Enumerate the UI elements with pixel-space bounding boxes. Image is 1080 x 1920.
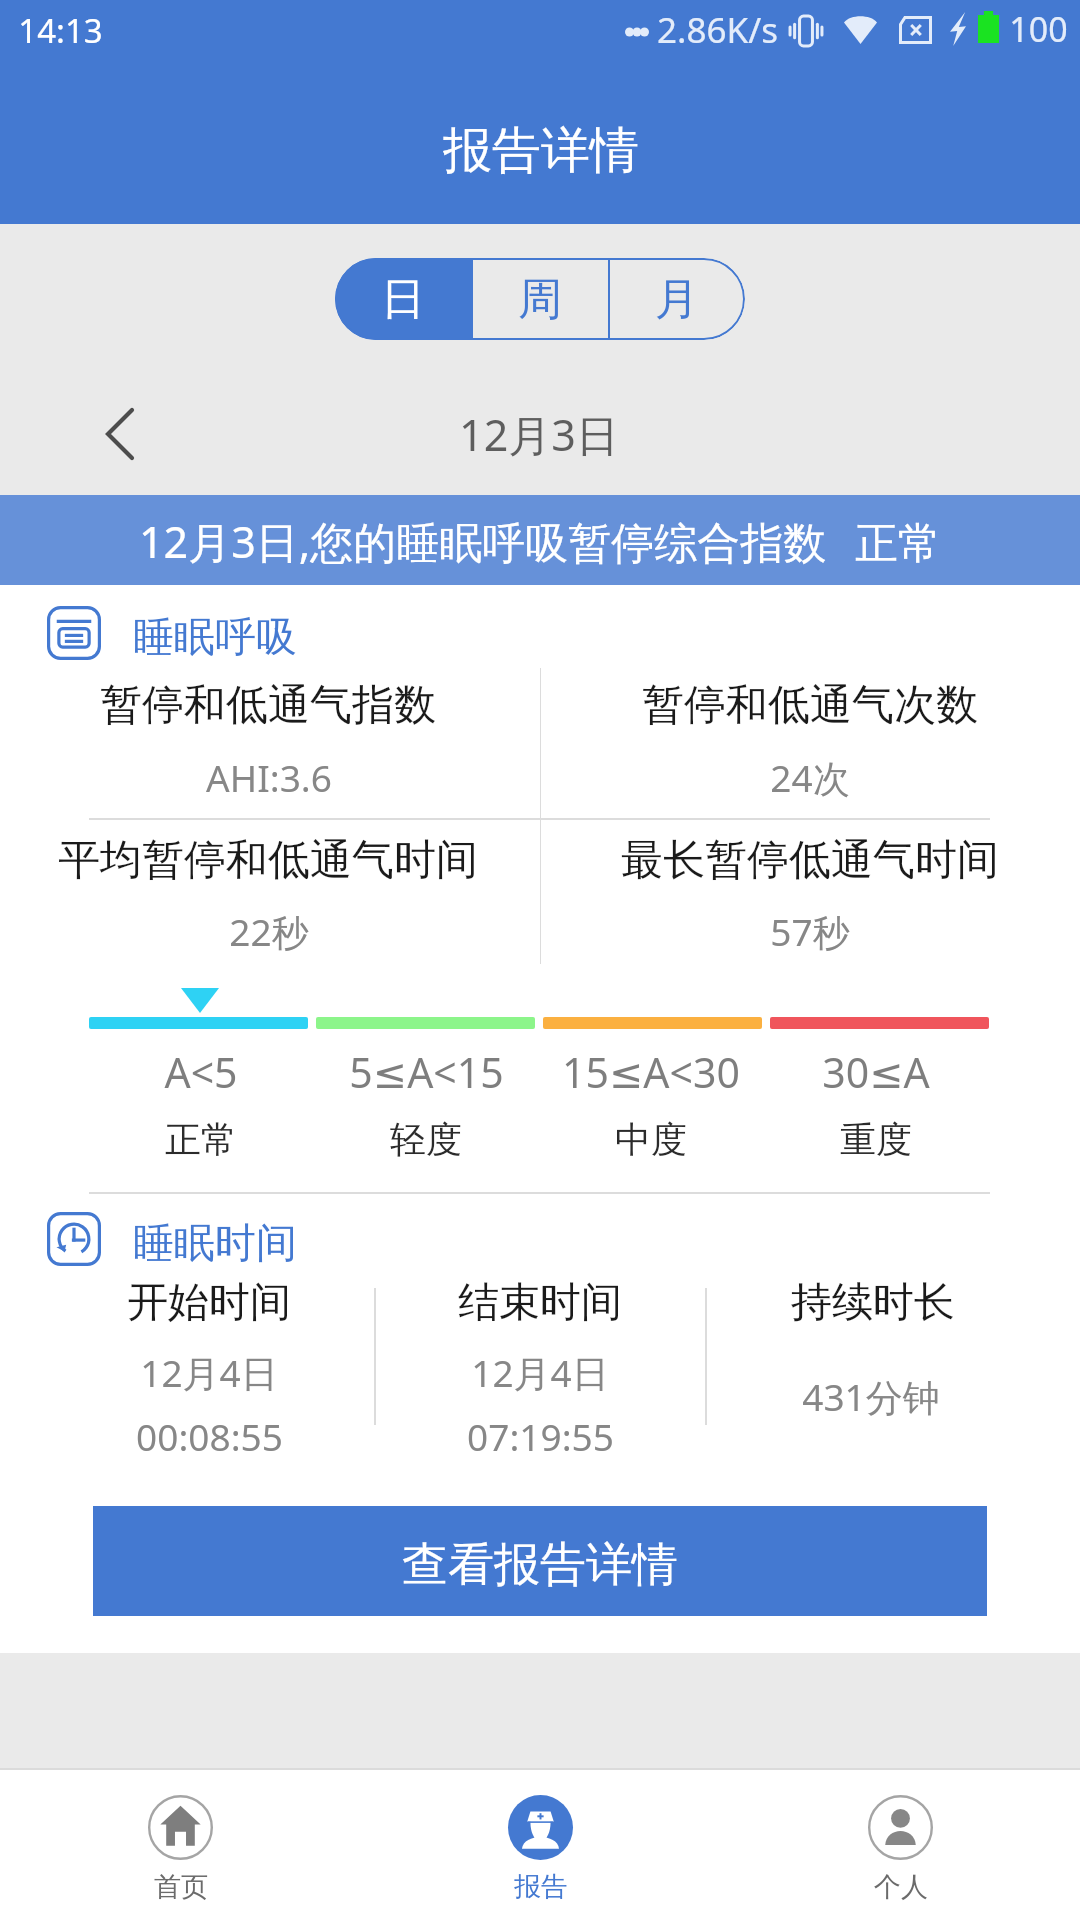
- staticText: 00:08:55: [136, 1411, 283, 1461]
- staticText: 30≤A: [822, 1044, 930, 1100]
- staticText: 12月3日: [459, 405, 619, 464]
- staticText: 12月3日,您的睡眠呼吸暂停综合指数 正常: [139, 512, 941, 571]
- staticText: 平均暂停和低通气时间: [58, 834, 478, 887]
- staticText: 100: [1009, 6, 1068, 52]
- staticText: 持续时长: [791, 1277, 955, 1329]
- staticText: AHI:3.6: [206, 752, 332, 802]
- staticText: 开始时间: [127, 1277, 291, 1329]
- button[interactable]: Previous day: [70, 384, 170, 484]
- staticText: 12月4日: [140, 1347, 278, 1398]
- staticText: 22秒: [229, 906, 309, 957]
- staticText: 睡眠呼吸: [133, 612, 297, 664]
- button[interactable]: 查看报告详情: [93, 1506, 987, 1616]
- staticText: 日: [381, 272, 425, 327]
- staticText: 431分钟: [802, 1371, 940, 1422]
- staticText: 2.86K/s: [657, 6, 778, 54]
- staticText: 24次: [770, 752, 850, 803]
- staticText: 中度: [615, 1117, 687, 1162]
- button[interactable]: 首页: [30, 1772, 330, 1920]
- staticText: 睡眠时间: [133, 1218, 297, 1270]
- staticText: 月: [655, 272, 699, 327]
- staticText: 报告: [514, 1870, 568, 1904]
- staticText: 报告详情: [443, 120, 639, 182]
- button[interactable]: 个人: [750, 1772, 1050, 1920]
- staticText: 57秒: [770, 906, 850, 957]
- staticText: 12月4日: [471, 1347, 609, 1398]
- staticText: 结束时间: [458, 1277, 622, 1329]
- staticText: 正常: [165, 1117, 237, 1162]
- staticText: 最长暂停低通气时间: [621, 834, 999, 887]
- staticText: 暂停和低通气次数: [642, 679, 978, 732]
- staticText: 5≤A<15: [349, 1044, 504, 1100]
- staticText: 轻度: [390, 1117, 462, 1162]
- button[interactable]: 月: [608, 258, 745, 340]
- staticText: A<5: [164, 1044, 238, 1100]
- staticText: 个人: [874, 1870, 928, 1904]
- staticText: 14:13: [18, 8, 103, 53]
- staticText: 15≤A<30: [562, 1044, 740, 1100]
- staticText: 周: [518, 272, 562, 327]
- staticText: 重度: [840, 1117, 912, 1162]
- staticText: 暂停和低通气指数: [100, 679, 436, 732]
- button[interactable]: 日: [335, 258, 471, 340]
- button[interactable]: 报告: [390, 1772, 690, 1920]
- staticText: 首页: [154, 1870, 208, 1904]
- staticText: 查看报告详情: [402, 1536, 678, 1594]
- button[interactable]: 周: [471, 258, 608, 340]
- staticText: 07:19:55: [467, 1411, 614, 1461]
